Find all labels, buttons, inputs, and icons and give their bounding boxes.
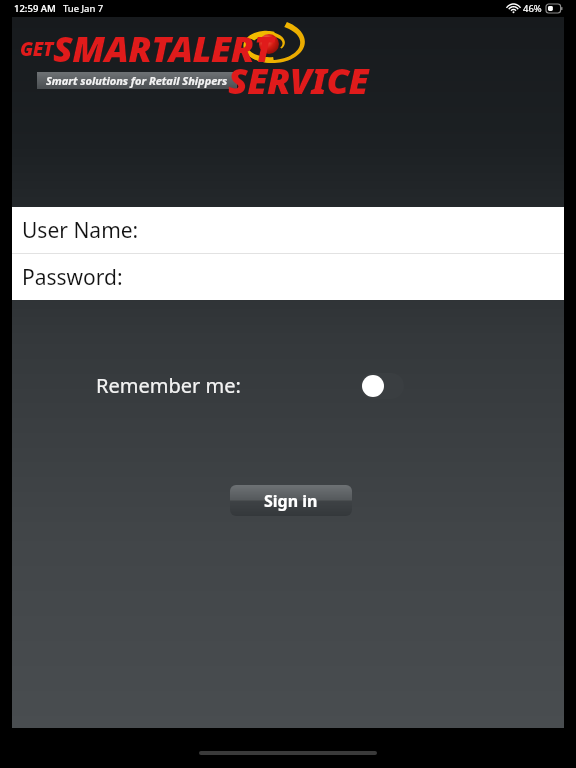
- staticText: 46%: [523, 2, 542, 15]
- staticText: Smart solutions for Retail Shippers: [46, 73, 228, 88]
- button[interactable]: Password:: [12, 254, 564, 300]
- staticText: GET: [20, 36, 53, 62]
- staticText: User Name:: [22, 216, 139, 245]
- staticText: 12:59 AM: [14, 2, 56, 15]
- staticText: SMARTALERT: [53, 24, 274, 73]
- staticText: Remember me:: [96, 372, 241, 399]
- staticText: Sign in: [264, 490, 318, 512]
- button[interactable]: Remember me toggle: [360, 373, 404, 399]
- button[interactable]: Sign in: [230, 485, 352, 516]
- staticText: Password:: [22, 263, 123, 292]
- button[interactable]: User Name:: [12, 207, 564, 253]
- staticText: SERVICE: [228, 56, 369, 105]
- staticText: Tue Jan 7: [63, 2, 104, 15]
